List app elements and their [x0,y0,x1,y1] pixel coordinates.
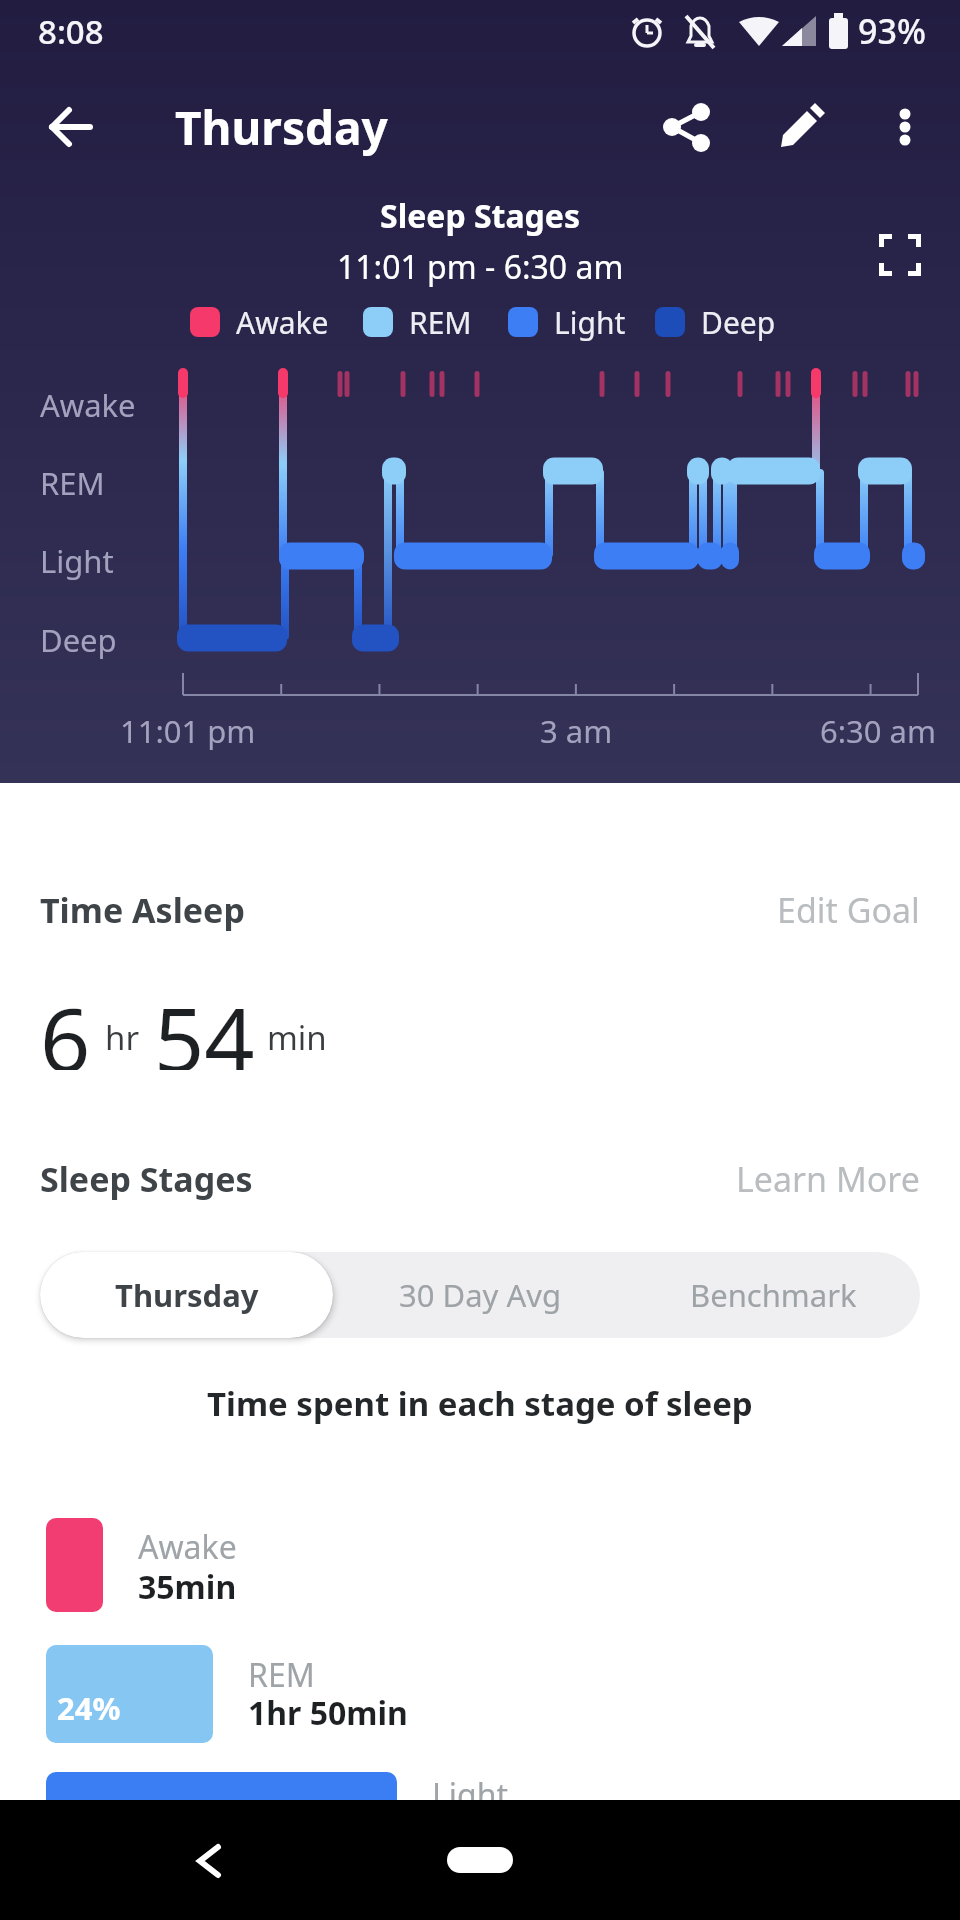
staticText: min [267,1015,327,1060]
button[interactable] [49,105,93,149]
staticText: Benchmark [690,1274,857,1316]
staticText: Light [432,1773,509,1817]
staticText: REM [40,462,105,504]
button[interactable]: Benchmark [627,1252,920,1338]
button[interactable]: Thursday [40,1252,333,1338]
button[interactable] [46,1772,397,1870]
staticText: Thursday [115,1274,259,1316]
staticText: 8:08 [38,9,104,54]
staticText: Thursday [175,96,388,159]
staticText: 35min [138,1565,237,1609]
button[interactable] [46,1518,103,1612]
staticText: Learn More [736,1156,920,1202]
staticText: 1hr 50min [248,1691,408,1735]
button[interactable] [777,103,825,151]
button[interactable] [447,1847,513,1873]
staticText: Time Asleep [40,887,245,933]
staticText: Time spent in each stage of sleep [207,1381,753,1426]
staticText: 6 [40,978,91,1070]
button[interactable] [889,103,921,151]
staticText: 3 am [540,710,613,752]
staticText: hr [105,1015,140,1060]
staticText: Awake [236,302,329,343]
button[interactable]: Time Asleep [0,0,205,68]
staticText: Deep [40,619,117,661]
staticText: 11:01 pm [120,710,256,752]
button[interactable] [879,234,921,276]
staticText: 54 [154,978,255,1070]
staticText: Awake [138,1525,237,1569]
button[interactable]: 30 Day Avg [333,1252,627,1338]
button[interactable] [192,1845,228,1877]
staticText: Light [554,302,626,343]
staticText: Edit Goal [777,887,920,933]
staticText: Awake [40,384,136,426]
button[interactable]: Learn More [0,0,920,68]
staticText: Deep [701,302,776,343]
button[interactable]: Edit Goal [0,0,920,68]
button[interactable]: 24% [46,1645,213,1743]
staticText: 11:01 pm - 6:30 am [337,245,624,289]
staticText: 30 Day Avg [399,1274,562,1316]
staticText: REM [409,302,472,343]
staticText: 24% [57,1687,121,1729]
staticText: 93% [858,8,926,54]
staticText: Sleep Stages [40,1156,253,1202]
staticText: 6:30 am [820,710,936,752]
button[interactable] [664,103,712,151]
staticText: Light [40,540,114,582]
staticText: Sleep Stages [380,194,581,238]
staticText: REM [248,1653,315,1697]
